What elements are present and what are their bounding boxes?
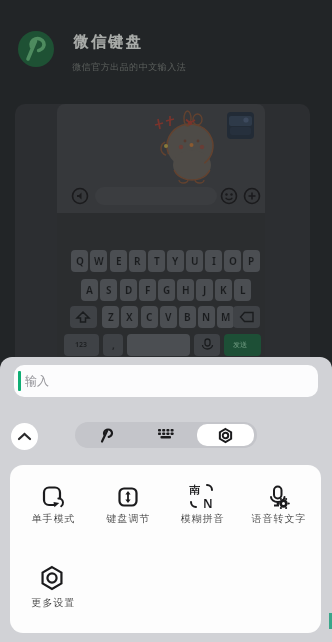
button[interactable] xyxy=(252,480,304,530)
staticText: 键盘调节 xyxy=(106,512,150,525)
staticText: L xyxy=(240,283,246,297)
staticText: 南 xyxy=(189,483,200,497)
staticText: H xyxy=(182,283,190,297)
staticText: 发送 xyxy=(233,340,247,349)
button[interactable] xyxy=(75,422,136,448)
staticText: O xyxy=(229,254,237,268)
staticText: B xyxy=(184,310,191,324)
staticText: P xyxy=(248,254,255,268)
staticText: , xyxy=(112,338,115,352)
staticText: 单手模式 xyxy=(31,512,75,525)
staticText: X xyxy=(126,310,133,324)
staticText: F xyxy=(145,283,151,297)
button[interactable] xyxy=(26,553,78,603)
staticText: 更多设置 xyxy=(31,596,75,609)
staticText: 微信键盘 xyxy=(72,33,142,52)
staticText: D xyxy=(125,283,133,297)
staticText: S xyxy=(106,283,112,297)
staticText: N xyxy=(203,495,213,511)
staticText: E xyxy=(116,254,122,268)
button[interactable] xyxy=(102,480,154,530)
staticText: 微信官方出品的中文输入法 xyxy=(72,61,186,72)
staticText: C xyxy=(146,310,153,324)
staticText: R xyxy=(134,254,141,268)
staticText: W xyxy=(94,254,104,268)
staticText: Z xyxy=(108,310,114,324)
staticText: 模糊拼音 xyxy=(180,512,224,525)
button[interactable] xyxy=(197,424,254,446)
staticText: K xyxy=(220,283,227,297)
staticText: V xyxy=(165,310,172,324)
button[interactable]: 南 xyxy=(176,480,228,530)
button[interactable] xyxy=(136,422,196,448)
staticText: M xyxy=(221,310,231,324)
staticText: N xyxy=(202,310,211,324)
staticText: 123 xyxy=(75,340,88,350)
staticText: 语音转文字 xyxy=(251,512,306,525)
staticText: U xyxy=(191,254,199,268)
button[interactable] xyxy=(11,423,38,450)
staticText: Q xyxy=(76,254,84,268)
staticText: I xyxy=(212,254,216,268)
staticText: Y xyxy=(172,254,179,268)
button[interactable] xyxy=(27,480,79,530)
staticText: J xyxy=(203,283,207,297)
staticText: A xyxy=(86,283,93,297)
staticText: 输入 xyxy=(25,373,49,388)
button[interactable]: 输入 xyxy=(14,365,318,397)
staticText: G xyxy=(163,283,171,297)
staticText: T xyxy=(154,254,160,268)
